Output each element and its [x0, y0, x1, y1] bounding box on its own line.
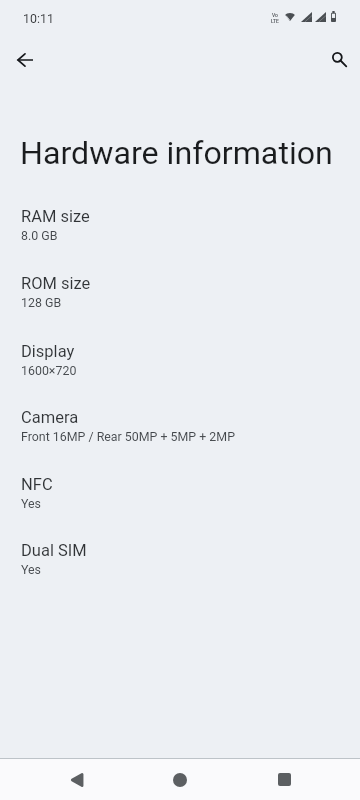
- button[interactable]: Search: [319, 39, 359, 79]
- staticText: 8.0 GB: [21, 228, 58, 243]
- button[interactable]: Display: [0, 342, 360, 409]
- button[interactable]: Recents: [260, 759, 308, 800]
- button[interactable]: Dual SIM: [0, 541, 360, 608]
- button[interactable]: RAM size: [0, 207, 360, 274]
- staticText: Yes: [21, 496, 42, 511]
- staticText: Hardware information: [20, 134, 333, 172]
- button[interactable]: Camera: [0, 408, 360, 475]
- staticText: Dual SIM: [21, 541, 87, 560]
- button[interactable]: Back: [52, 759, 100, 800]
- staticText: Display: [21, 342, 75, 361]
- button[interactable]: Home: [156, 759, 204, 800]
- staticText: 128 GB: [21, 295, 62, 310]
- staticText: NFC: [21, 475, 53, 494]
- staticText: Front 16MP / Rear 50MP + 5MP + 2MP: [21, 429, 235, 444]
- staticText: RAM size: [21, 207, 90, 226]
- staticText: LTE: [271, 18, 279, 24]
- button[interactable]: NFC: [0, 475, 360, 542]
- staticText: 1600×720: [21, 363, 77, 378]
- button[interactable]: ROM size: [0, 274, 360, 341]
- button[interactable]: Back: [5, 40, 45, 80]
- staticText: Yes: [21, 562, 42, 577]
- staticText: ROM size: [21, 274, 91, 293]
- staticText: Camera: [21, 408, 79, 427]
- staticText: 10:11: [23, 11, 54, 26]
- staticText: Vo: [272, 12, 278, 18]
